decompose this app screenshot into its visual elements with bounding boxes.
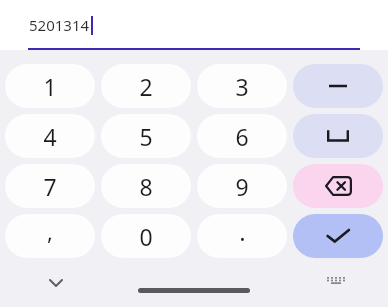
staticText: 1 (43, 71, 57, 102)
button[interactable]: Switch keyboard (322, 269, 350, 297)
button[interactable]: Done (293, 214, 383, 258)
button[interactable]: 2 (101, 64, 191, 108)
staticText: 2 (139, 71, 153, 102)
button[interactable]: 4 (5, 114, 95, 158)
staticText: 5 (139, 121, 153, 152)
staticText: 3 (235, 71, 249, 102)
staticText: , (47, 216, 53, 246)
button[interactable]: 0 (101, 214, 191, 258)
button[interactable]: , (5, 214, 95, 258)
staticText: 7 (43, 171, 57, 202)
staticText: 9 (235, 171, 249, 202)
button[interactable]: 7 (5, 164, 95, 208)
button[interactable]: Backspace (293, 164, 383, 208)
button[interactable]: Minus (293, 64, 383, 108)
staticText: 8 (139, 171, 153, 202)
staticText: 4 (43, 121, 57, 152)
staticText: . (239, 215, 246, 248)
button[interactable]: 3 (197, 64, 287, 108)
button[interactable]: 5 (101, 114, 191, 158)
staticText: 5201314 (29, 15, 90, 35)
button[interactable]: Hide keyboard (42, 269, 70, 297)
button[interactable]: Space (293, 114, 383, 158)
button[interactable]: 6 (197, 114, 287, 158)
staticText: 6 (235, 121, 249, 152)
button[interactable]: 9 (197, 164, 287, 208)
button[interactable]: 5201314 (0, 0, 388, 50)
staticText: 0 (139, 221, 153, 252)
button[interactable]: 8 (101, 164, 191, 208)
button[interactable]: 1 (5, 64, 95, 108)
button[interactable]: . (197, 214, 287, 258)
